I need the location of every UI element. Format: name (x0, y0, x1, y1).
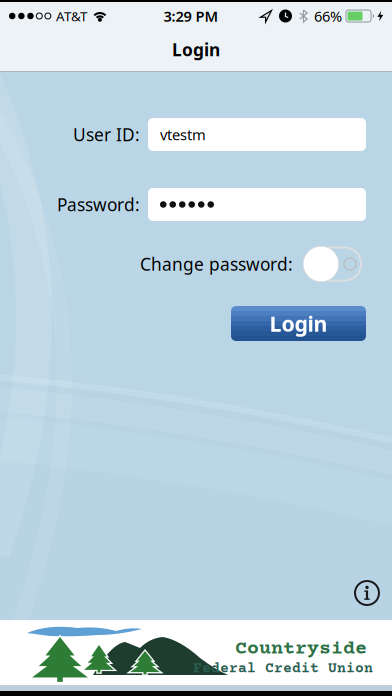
staticText: Login (269, 309, 327, 338)
staticText: Countryside (235, 638, 367, 660)
staticText: Password: (57, 193, 140, 216)
staticText: AT&T (56, 7, 87, 25)
staticText: vtestm (160, 125, 206, 144)
staticText: 3:29 PM (163, 6, 218, 26)
button[interactable]: Password (148, 188, 366, 221)
staticText: User ID: (73, 123, 140, 146)
staticText: Federal Credit Union (193, 661, 373, 677)
staticText: 66% (314, 6, 342, 26)
button[interactable]: Info (355, 581, 379, 605)
button[interactable]: Login (231, 306, 366, 341)
button[interactable]: User ID (148, 118, 366, 151)
staticText: Change password: (140, 252, 293, 275)
button[interactable]: Change password (303, 246, 362, 282)
staticText: Login (172, 38, 220, 61)
